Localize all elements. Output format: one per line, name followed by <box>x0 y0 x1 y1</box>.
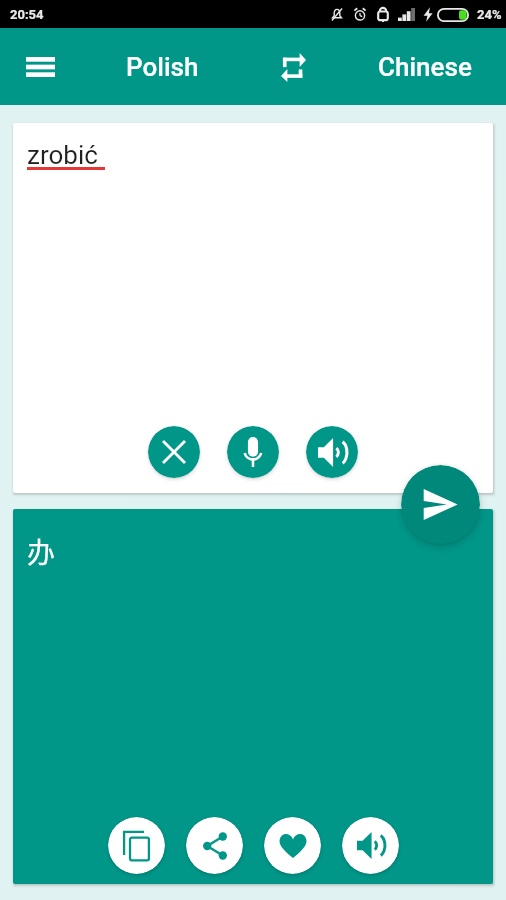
staticText: Polish <box>126 52 199 82</box>
staticText: 24% <box>477 7 502 22</box>
button[interactable]: Favorite <box>264 817 321 874</box>
button[interactable]: Chinese <box>343 28 506 105</box>
button[interactable]: Voice input <box>227 426 279 478</box>
button[interactable]: Copy <box>108 817 165 874</box>
button[interactable]: Menu <box>0 28 80 105</box>
staticText: 办 <box>27 531 56 572</box>
button[interactable]: Polish <box>80 28 244 105</box>
button[interactable]: Listen <box>306 426 358 478</box>
button[interactable]: Translate <box>401 465 480 544</box>
button[interactable]: Clear <box>148 426 200 478</box>
staticText: Chinese <box>378 52 472 82</box>
button[interactable]: Listen <box>342 817 399 874</box>
staticText: 20:54 <box>10 7 44 22</box>
button[interactable]: Swap languages <box>244 28 343 105</box>
button[interactable]: Share <box>186 817 243 874</box>
staticText: zrobić <box>27 140 98 170</box>
